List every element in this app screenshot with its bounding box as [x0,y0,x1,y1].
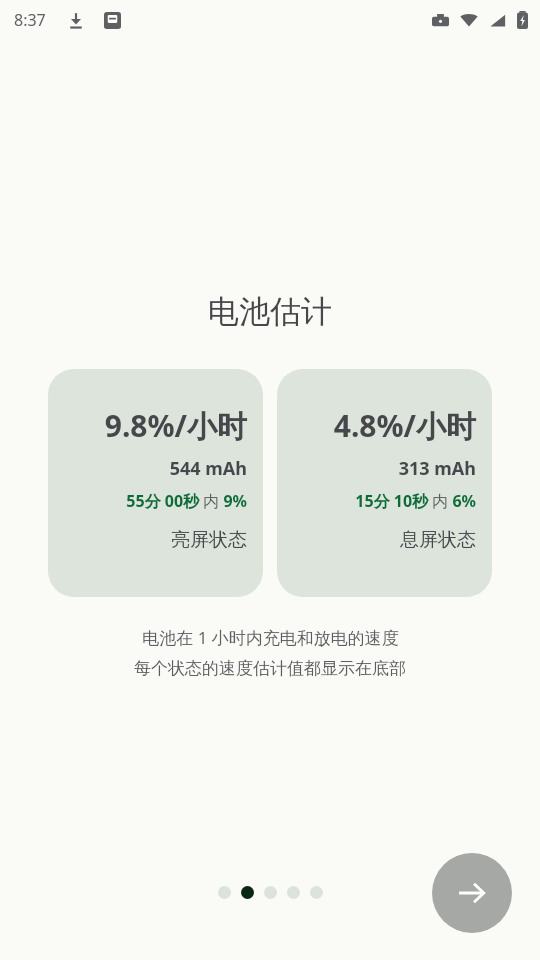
staticText: 15分 10秒 内 6% [355,490,476,512]
staticText: 电池在 1 小时内充电和放电的速度 [142,626,399,649]
staticText: 9.8%/小时 [104,405,247,446]
staticText: 313 mAh [398,456,476,481]
button[interactable]: 9.8%/小时 [48,369,263,597]
button[interactable]: Page 4 [287,886,300,899]
button[interactable]: Page 1 [218,886,231,899]
staticText: 亮屏状态 [171,528,247,552]
button[interactable]: 4.8%/小时 [277,369,492,597]
staticText: 电池估计 [208,292,332,331]
staticText: 4.8%/小时 [333,405,476,446]
button[interactable]: Page 3 [264,886,277,899]
button[interactable]: Page 2 [241,886,254,899]
staticText: 8:37 [14,9,46,31]
button[interactable]: Next [432,853,512,933]
staticText: 每个状态的速度估计值都显示在底部 [134,658,406,679]
staticText: 544 mAh [169,456,247,481]
staticText: 息屏状态 [400,528,476,552]
button[interactable]: Page 5 [310,886,323,899]
staticText: 55分 00秒 内 9% [126,490,247,512]
